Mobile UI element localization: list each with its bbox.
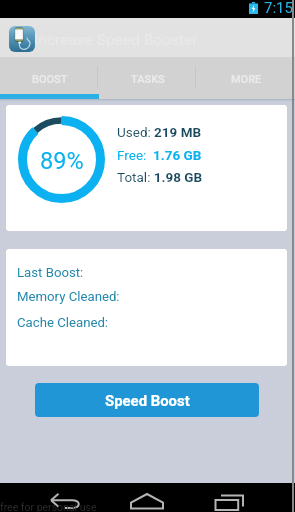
staticText: Total: 1.98 GB [117, 169, 203, 185]
button[interactable]: Home [125, 483, 170, 512]
staticText: Used: 219 MB [117, 124, 202, 140]
staticText: Cache Cleaned: [17, 315, 109, 330]
staticText: Free: 1.76 GB [117, 147, 202, 163]
button[interactable]: MORE [197, 57, 295, 99]
button[interactable]: TASKS [99, 57, 197, 99]
staticText: MORE [231, 73, 262, 86]
staticText: Increase Speed Booster [34, 31, 198, 49]
staticText: BOOST [32, 73, 68, 86]
staticText: Last Boost: [17, 265, 84, 280]
staticText: 7:15 [264, 0, 293, 17]
button[interactable]: Back [40, 483, 90, 512]
button[interactable]: Recent apps [210, 483, 255, 512]
button[interactable]: Speed Boost [35, 383, 259, 417]
button[interactable]: BOOST [0, 57, 99, 99]
staticText: Speed Boost [105, 392, 190, 409]
staticText: Memory Cleaned: [17, 289, 120, 304]
staticText: 89% [40, 147, 84, 175]
staticText: free for personal use [0, 501, 97, 512]
staticText: TASKS [131, 73, 165, 86]
